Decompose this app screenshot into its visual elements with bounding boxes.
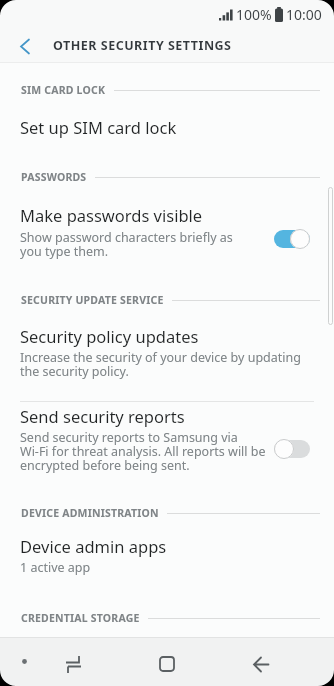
staticText: Security policy updates — [20, 325, 199, 347]
staticText: Increase the security of your device by … — [20, 349, 301, 380]
button[interactable] — [239, 642, 283, 686]
staticText: 10:00 — [286, 5, 322, 24]
staticText: Send security reports — [20, 405, 185, 427]
staticText: SECURITY UPDATE SERVICE — [21, 293, 164, 307]
button[interactable] — [10, 31, 40, 61]
button[interactable] — [51, 642, 95, 686]
staticText: Set up SIM card lock — [20, 116, 177, 138]
staticText: Send security reports to Samsung via Wi-… — [20, 429, 266, 474]
staticText: CREDENTIAL STORAGE — [21, 611, 140, 625]
button[interactable]: Device admin apps — [0, 533, 334, 576]
staticText: 100% — [236, 5, 272, 24]
button[interactable]: Security policy updates — [0, 323, 334, 380]
staticText: DEVICE ADMINISTRATION — [21, 506, 159, 520]
staticText: Show password characters briefly as you … — [20, 229, 233, 260]
button[interactable]: Set up SIM card lock — [0, 111, 334, 142]
staticText: Device admin apps — [20, 535, 167, 557]
staticText: PASSWORDS — [21, 170, 87, 184]
button[interactable]: Send security reports — [0, 403, 320, 474]
button[interactable]: Make passwords visible — [0, 202, 320, 260]
staticText: OTHER SECURITY SETTINGS — [53, 37, 232, 54]
button[interactable] — [145, 642, 189, 686]
staticText: 1 active app — [20, 559, 91, 576]
staticText: SIM CARD LOCK — [21, 83, 106, 97]
staticText: Make passwords visible — [20, 204, 203, 226]
